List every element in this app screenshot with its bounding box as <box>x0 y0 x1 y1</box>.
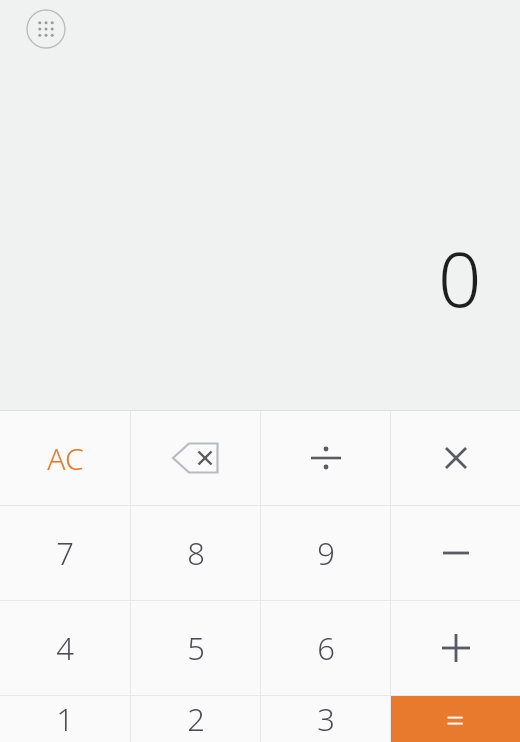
staticText: 9 <box>317 532 335 574</box>
staticText: 4 <box>56 627 74 669</box>
staticText: 0 <box>438 226 482 330</box>
staticText: 7 <box>56 532 74 574</box>
button[interactable]: 6 <box>261 601 390 695</box>
staticText: 6 <box>317 627 335 669</box>
button[interactable]: 4 <box>0 601 130 695</box>
staticText: 2 <box>187 698 205 740</box>
button[interactable]: 9 <box>261 506 390 600</box>
button[interactable]: 8 <box>131 506 260 600</box>
button[interactable]: 7 <box>0 506 130 600</box>
button[interactable]: 2 <box>131 696 260 742</box>
button[interactable]: Divide <box>261 411 390 505</box>
button[interactable]: Minus <box>391 506 520 600</box>
button[interactable]: Backspace <box>131 411 260 505</box>
button[interactable]: Apps <box>26 9 66 49</box>
staticText: 1 <box>56 698 74 740</box>
staticText: AC <box>47 438 84 479</box>
button[interactable]: AC <box>0 411 130 505</box>
staticText: 3 <box>317 698 335 740</box>
button[interactable]: 3 <box>261 696 390 742</box>
button[interactable]: Multiply <box>391 411 520 505</box>
button[interactable]: 1 <box>0 696 130 742</box>
staticText: = <box>446 697 465 741</box>
button[interactable]: Equals <box>391 696 520 742</box>
staticText: 5 <box>187 627 205 669</box>
button[interactable]: 5 <box>131 601 260 695</box>
button[interactable]: Plus <box>391 601 520 695</box>
staticText: 8 <box>187 532 205 574</box>
